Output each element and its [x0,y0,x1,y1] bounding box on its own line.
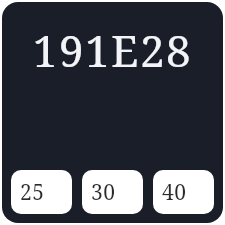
button[interactable]: 40 [153,170,214,214]
staticText: 30 [91,178,116,207]
button[interactable]: 30 [82,170,143,214]
staticText: 191E28 [10,20,215,80]
staticText: 40 [162,178,187,207]
button[interactable]: 25 [11,170,72,214]
staticText: 25 [20,178,45,207]
